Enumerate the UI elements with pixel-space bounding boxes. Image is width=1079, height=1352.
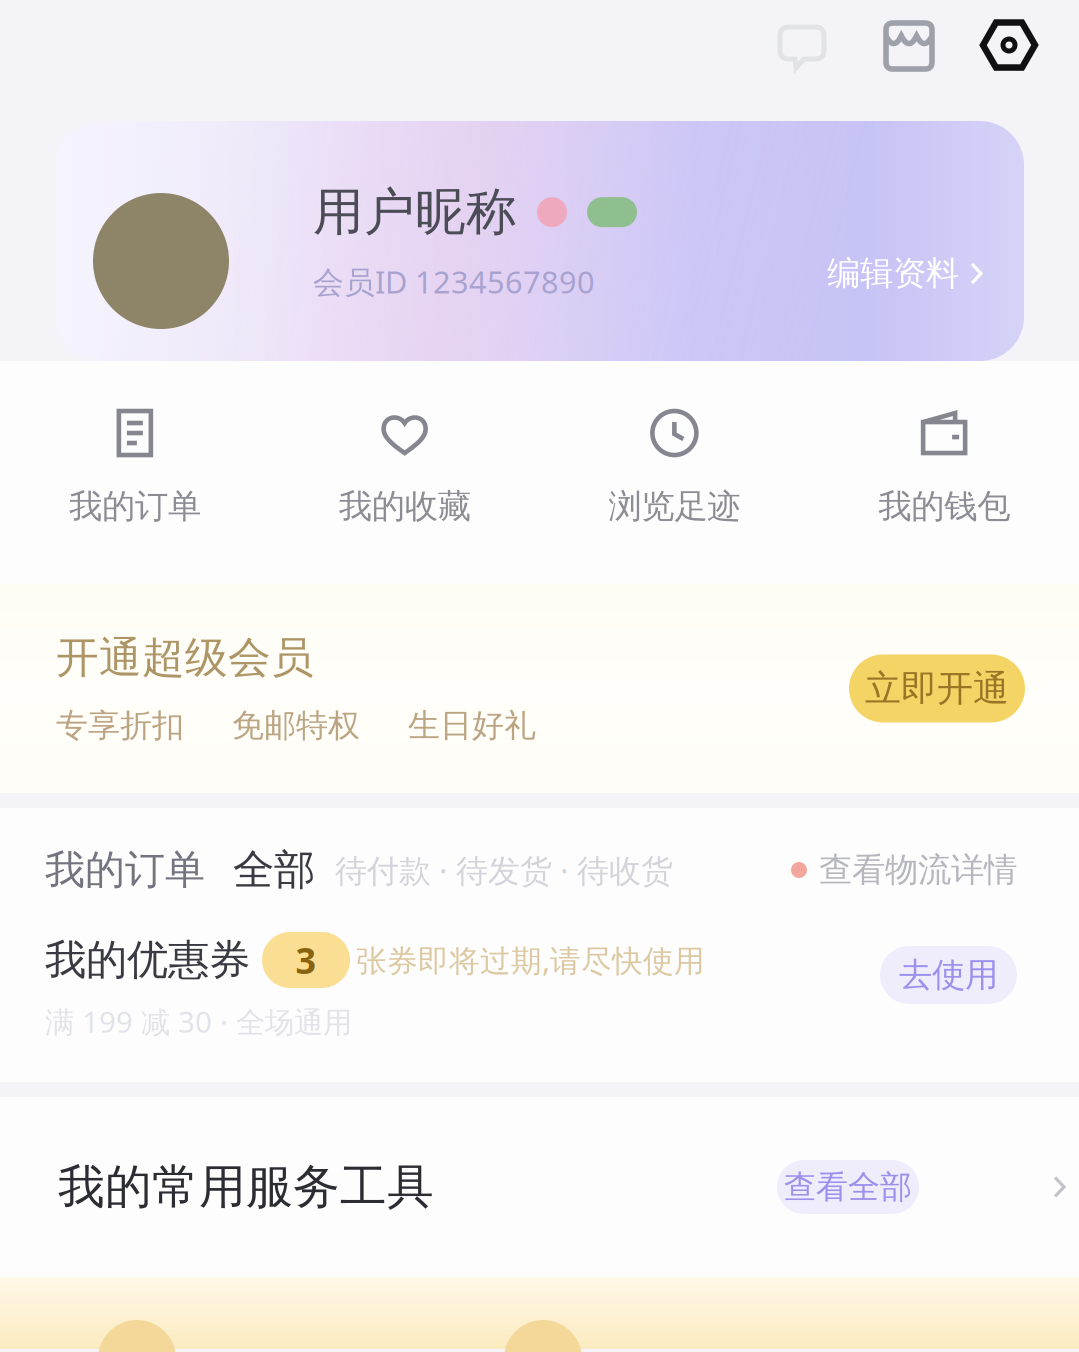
staticText: 待付款 · 待发货 · 待收货 bbox=[335, 849, 673, 891]
button[interactable]: 开通超级会员 bbox=[0, 584, 1079, 793]
staticText: 免邮特权 bbox=[232, 706, 360, 745]
staticText: 我的优惠券 bbox=[45, 935, 250, 985]
button[interactable]: 我的钱包 bbox=[809, 406, 1079, 527]
staticText: 去使用 bbox=[899, 954, 998, 995]
button[interactable]: 消息 bbox=[776, 17, 828, 73]
staticText: 立即开通 bbox=[865, 666, 1009, 711]
staticText: 全部 bbox=[233, 845, 315, 895]
button[interactable]: 查看全部 bbox=[777, 1160, 919, 1214]
staticText: 开通超级会员 bbox=[56, 632, 314, 684]
staticText: 我的收藏 bbox=[339, 486, 471, 527]
button[interactable]: 立即开通 bbox=[849, 654, 1025, 722]
staticText: 我的订单 bbox=[69, 486, 201, 527]
staticText: 生日好礼 bbox=[408, 706, 536, 745]
staticText: 我的常用服务工具 bbox=[58, 1158, 434, 1216]
staticText: 3 bbox=[295, 936, 316, 984]
button[interactable]: 设置 bbox=[980, 17, 1038, 73]
button[interactable]: 我的订单 bbox=[0, 808, 1079, 932]
button[interactable]: 店铺 bbox=[882, 16, 936, 74]
staticText: 查看物流详情 bbox=[819, 849, 1017, 890]
staticText: 用户昵称 bbox=[313, 181, 517, 243]
button[interactable]: 我的订单 bbox=[0, 406, 270, 527]
staticText: 编辑资料 bbox=[827, 253, 959, 294]
staticText: 浏览足迹 bbox=[608, 486, 740, 527]
button[interactable]: 我的收藏 bbox=[270, 406, 540, 527]
button[interactable]: 我的常用服务工具 bbox=[0, 1097, 1079, 1277]
button[interactable]: 浏览足迹 bbox=[539, 406, 809, 527]
staticText: 张券即将过期,请尽快使用 bbox=[356, 940, 705, 980]
staticText: 我的订单 bbox=[45, 845, 205, 894]
staticText: 专享折扣 bbox=[56, 706, 184, 745]
staticText: 我的钱包 bbox=[878, 486, 1010, 527]
staticText: 查看全部 bbox=[784, 1167, 912, 1207]
staticText: 会员ID 1234567890 bbox=[313, 261, 595, 302]
button[interactable]: 用户昵称 bbox=[55, 121, 1024, 361]
button[interactable]: 我的优惠券 bbox=[0, 932, 1079, 1082]
button[interactable]: 去使用 bbox=[880, 946, 1017, 1004]
staticText: 满 199 减 30 · 全场通用 bbox=[45, 1002, 352, 1041]
